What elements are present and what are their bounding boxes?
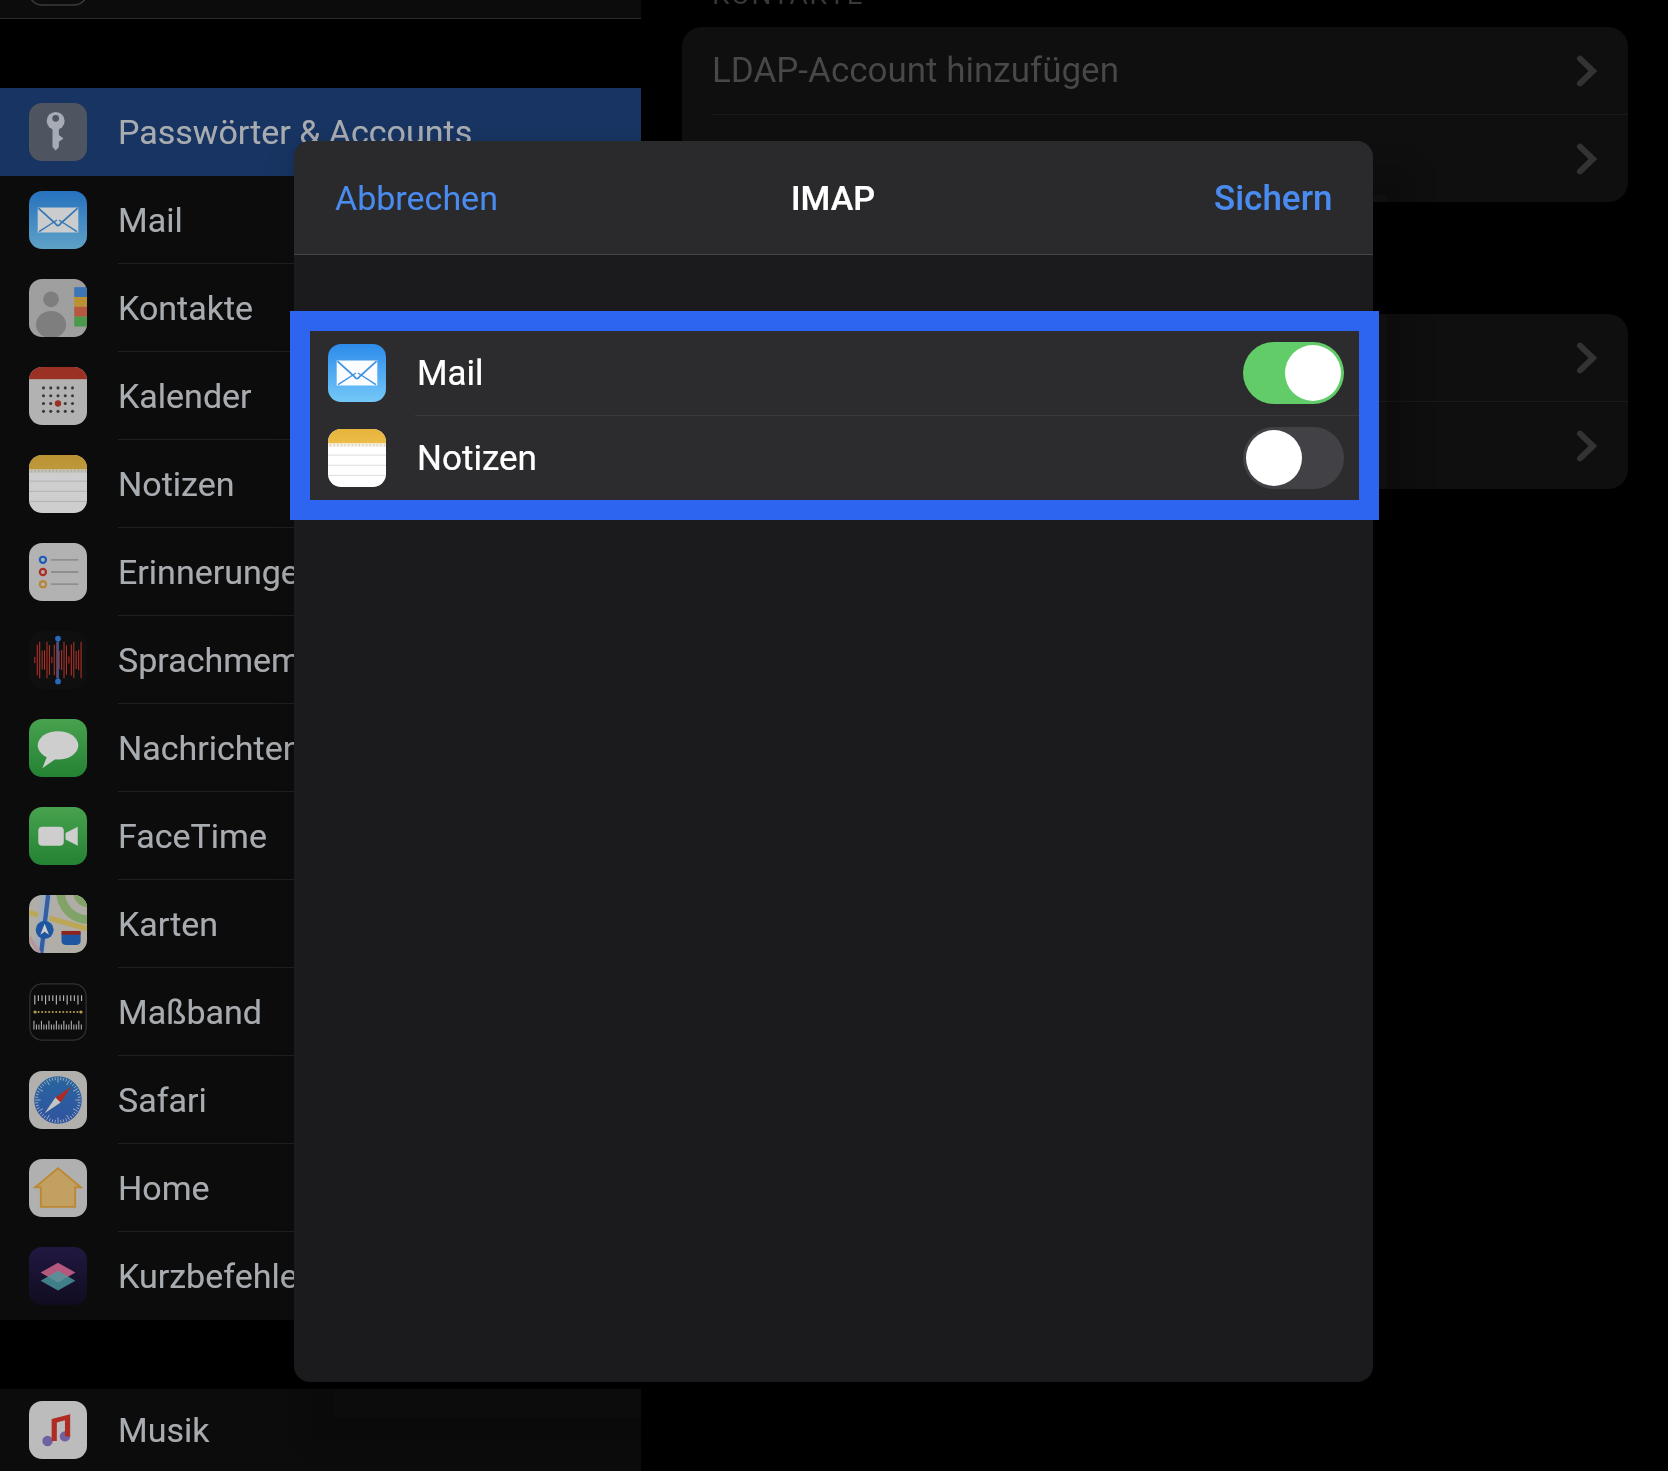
button[interactable]: LDAP-Account hinzufügen: [682, 27, 1628, 114]
button[interactable]: Kalender: [0, 352, 641, 440]
staticText: IMAP: [791, 178, 876, 218]
button[interactable]: Mail: [310, 331, 1359, 415]
button[interactable]: Safari: [0, 1056, 641, 1144]
staticText: Notizen: [417, 438, 537, 479]
button[interactable]: Account: [682, 402, 1628, 489]
button[interactable]: Kontakte: [0, 264, 641, 352]
staticText: Sprachmemos: [118, 640, 338, 680]
button[interactable]: Karten: [0, 880, 641, 968]
staticText: Maßband: [118, 992, 262, 1032]
staticText: Kontakte: [118, 288, 254, 328]
button[interactable]: Home: [0, 1144, 641, 1232]
staticText: Safari: [118, 1080, 207, 1120]
staticText: Erinnerungen: [118, 552, 318, 592]
button[interactable]: Maßband: [0, 968, 641, 1056]
button[interactable]: Notizen: [0, 440, 641, 528]
button[interactable]: Mail: [0, 176, 641, 264]
staticText: FaceTime: [118, 816, 267, 856]
staticText: Karten: [118, 904, 219, 944]
button[interactable]: Account: [682, 115, 1628, 202]
button[interactable]: Sprachmemos: [0, 616, 641, 704]
button[interactable]: FaceTime: [0, 792, 641, 880]
button[interactable]: Nachrichten: [0, 704, 641, 792]
button[interactable]: Sichern: [1194, 164, 1353, 233]
staticText: KONTAKTE: [712, 0, 865, 11]
staticText: Mail: [118, 200, 183, 240]
button[interactable]: Erinnerungen: [0, 528, 641, 616]
button[interactable]: Kurzbefehle: [0, 1232, 641, 1320]
staticText: Passwörter & Accounts: [118, 112, 473, 152]
staticText: Kalender: [118, 376, 252, 416]
button[interactable]: Passwörter & Accounts: [0, 88, 641, 176]
button[interactable]: Notizen switch, off: [1243, 427, 1344, 489]
staticText: Mail: [417, 353, 484, 394]
button[interactable]: Musik: [0, 1389, 641, 1471]
button[interactable]: Account: [682, 314, 1628, 401]
staticText: Musik: [118, 1410, 210, 1450]
staticText: LDAP-Account hinzufügen: [712, 50, 1120, 91]
button[interactable]: Abbrechen: [315, 164, 518, 232]
staticText: Nachrichten: [118, 728, 302, 768]
button[interactable]: Mail switch, on: [1243, 342, 1344, 404]
staticText: Sichern: [1214, 178, 1333, 219]
staticText: Abbrechen: [335, 178, 498, 218]
staticText: Home: [118, 1168, 210, 1208]
button[interactable]: Notizen: [310, 416, 1359, 500]
staticText: Notizen: [118, 464, 235, 504]
staticText: Kurzbefehle: [118, 1256, 298, 1296]
